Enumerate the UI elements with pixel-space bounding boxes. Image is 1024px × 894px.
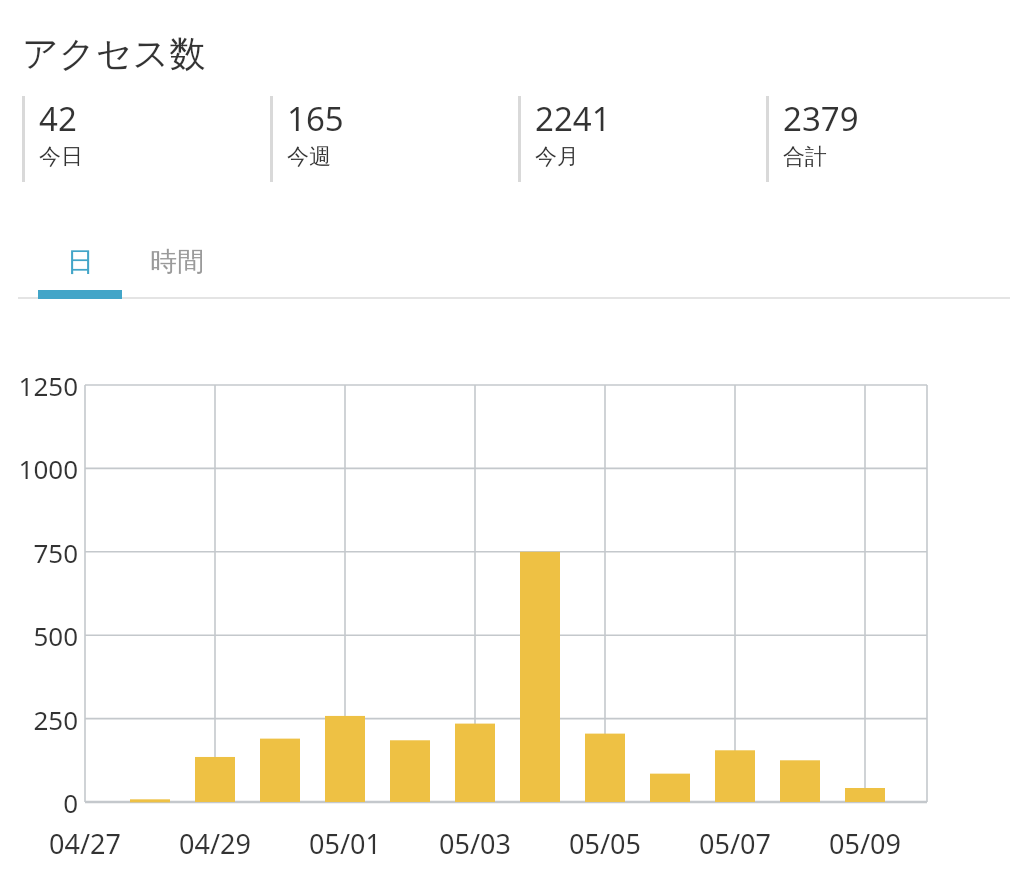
staticText: 今週 (287, 143, 331, 171)
staticText: 05/09 (829, 825, 901, 862)
staticText: 2379 (783, 96, 859, 141)
button[interactable]: 165 (248, 96, 496, 182)
staticText: 500 (33, 618, 78, 653)
staticText: 1000 (18, 451, 78, 486)
staticText: 04/29 (179, 825, 251, 862)
staticText: アクセス数 (22, 31, 206, 76)
staticText: 42 (39, 96, 77, 141)
staticText: 05/05 (569, 825, 641, 862)
staticText: 今日 (39, 143, 83, 171)
staticText: 時間 (150, 245, 204, 279)
staticText: 250 (33, 702, 78, 737)
staticText: 日 (67, 245, 94, 279)
staticText: 2241 (535, 96, 611, 141)
button[interactable]: 日 (38, 228, 122, 296)
staticText: 165 (287, 96, 344, 141)
staticText: 04/27 (49, 825, 121, 862)
button[interactable]: 42 (0, 96, 248, 182)
staticText: 05/07 (699, 825, 771, 862)
staticText: 750 (33, 535, 78, 570)
staticText: 合計 (783, 143, 827, 171)
staticText: 今月 (535, 143, 579, 171)
staticText: 1250 (18, 368, 78, 403)
button[interactable]: 2241 (496, 96, 744, 182)
staticText: 05/01 (309, 825, 381, 862)
button[interactable]: 2379 (744, 96, 992, 182)
staticText: 05/03 (439, 825, 511, 862)
button[interactable]: 時間 (122, 228, 232, 296)
staticText: 0 (63, 785, 78, 820)
